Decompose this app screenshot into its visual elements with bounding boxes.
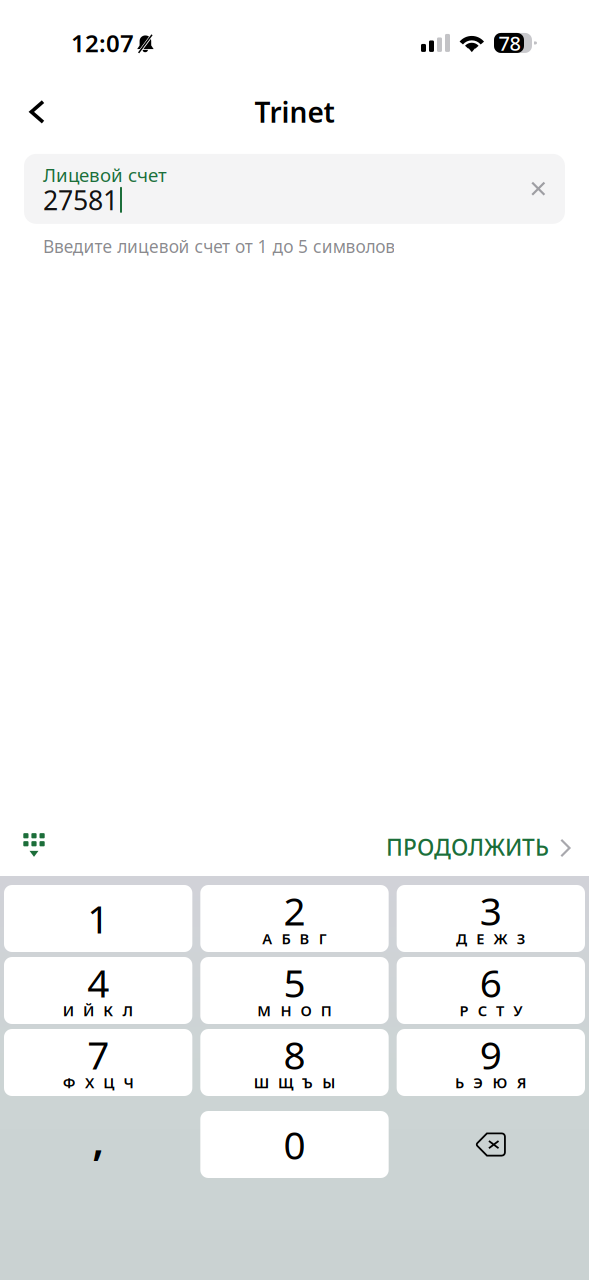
staticText: Д Е Ж З bbox=[456, 929, 526, 948]
staticText: Ш Щ Ъ Ы bbox=[254, 1073, 335, 1092]
staticText: Ф Х Ц Ч bbox=[63, 1073, 133, 1092]
button[interactable]: 7 bbox=[4, 1029, 192, 1096]
staticText: ПРОДОЛЖИТЬ bbox=[386, 832, 549, 862]
staticText: Введите лицевой счет от 1 до 5 символов bbox=[43, 235, 395, 258]
button[interactable]: 8 bbox=[200, 1029, 389, 1096]
staticText: 8 bbox=[283, 1029, 305, 1080]
staticText: Лицевой счет bbox=[43, 162, 167, 187]
staticText: Р С Т У bbox=[459, 1001, 522, 1020]
button[interactable]: 6 bbox=[397, 957, 585, 1024]
button[interactable]: 3 bbox=[397, 885, 585, 952]
staticText: И Й К Л bbox=[63, 1001, 133, 1020]
button[interactable]: Backspace bbox=[397, 1111, 585, 1178]
staticText: 78 bbox=[498, 30, 520, 56]
staticText: 12:07 bbox=[71, 27, 134, 59]
button[interactable]: 1 bbox=[4, 885, 192, 952]
staticText: 1 bbox=[87, 893, 109, 944]
staticText: 9 bbox=[480, 1029, 502, 1080]
staticText: Ь Э Ю Я bbox=[455, 1073, 527, 1092]
staticText: М Н О П bbox=[257, 1001, 332, 1020]
staticText: Trinet bbox=[254, 93, 334, 130]
button[interactable]: 4 bbox=[4, 957, 192, 1024]
staticText: 4 bbox=[87, 957, 109, 1008]
button[interactable]: Clear bbox=[517, 167, 560, 210]
staticText: 2 bbox=[283, 885, 305, 936]
button[interactable]: , bbox=[4, 1111, 192, 1178]
staticText: А Б В Г bbox=[262, 929, 327, 948]
button[interactable]: 9 bbox=[397, 1029, 585, 1096]
staticText: 7 bbox=[87, 1029, 109, 1080]
button[interactable]: Back bbox=[13, 88, 61, 136]
button[interactable]: Hide keyboard bbox=[12, 823, 56, 871]
staticText: 27581 bbox=[43, 182, 118, 218]
staticText: 0 bbox=[283, 1119, 305, 1170]
staticText: 6 bbox=[480, 957, 502, 1008]
button[interactable]: ПРОДОЛЖИТЬ bbox=[374, 820, 583, 874]
staticText: 5 bbox=[283, 957, 305, 1008]
button[interactable]: 5 bbox=[200, 957, 389, 1024]
button[interactable]: 0 bbox=[200, 1111, 389, 1178]
staticText: 3 bbox=[480, 885, 502, 936]
staticText: , bbox=[92, 1110, 104, 1167]
button[interactable]: 2 bbox=[200, 885, 389, 952]
